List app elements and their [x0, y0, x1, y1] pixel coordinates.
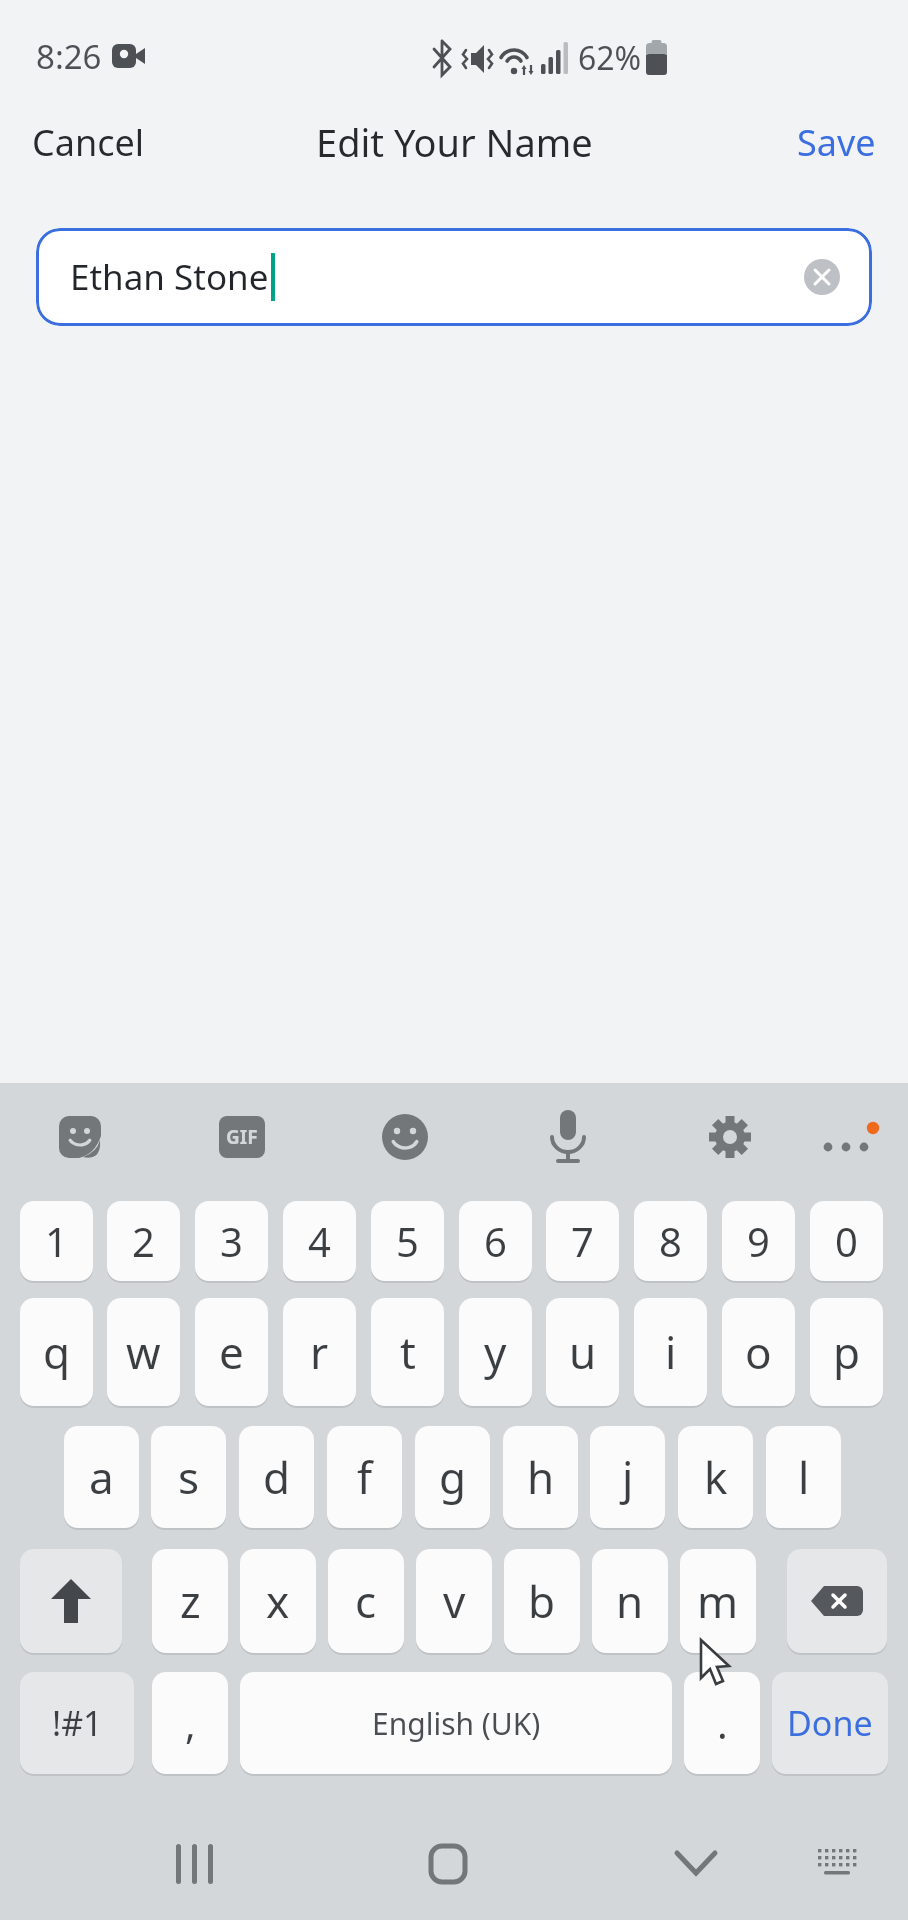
staticText: m	[697, 1571, 739, 1631]
staticText: Done	[787, 1700, 873, 1746]
button[interactable]: h	[503, 1426, 578, 1528]
button[interactable]	[20, 1549, 122, 1653]
button[interactable]: 1	[20, 1201, 93, 1281]
button[interactable]: 2	[107, 1201, 180, 1281]
button[interactable]	[805, 1832, 869, 1896]
staticText: s	[178, 1447, 200, 1507]
button[interactable]: i	[634, 1298, 707, 1406]
staticText: 9	[747, 1214, 770, 1268]
staticText: d	[263, 1447, 291, 1507]
button[interactable]	[160, 1828, 232, 1900]
button[interactable]: Save	[797, 112, 876, 172]
button[interactable]: c	[328, 1549, 404, 1653]
button[interactable]: English (UK)	[240, 1672, 672, 1774]
button[interactable]	[56, 1113, 104, 1161]
staticText: 0	[835, 1214, 858, 1268]
staticText: f	[357, 1447, 373, 1507]
staticText: .	[717, 1696, 728, 1750]
button[interactable]: .	[684, 1672, 760, 1774]
staticText: !#1	[52, 1700, 103, 1746]
button[interactable]	[381, 1113, 429, 1161]
button[interactable]	[820, 1113, 880, 1173]
button[interactable]: GIF	[218, 1113, 266, 1161]
button[interactable]: y	[459, 1298, 532, 1406]
button[interactable]	[544, 1109, 592, 1165]
staticText: y	[484, 1322, 507, 1382]
staticText: l	[798, 1447, 810, 1507]
staticText: 4	[308, 1214, 331, 1268]
staticText: 3	[220, 1214, 243, 1268]
button[interactable]	[412, 1828, 484, 1900]
button[interactable]: 6	[459, 1201, 532, 1281]
staticText: 62%	[578, 36, 642, 80]
staticText: a	[89, 1447, 114, 1507]
button[interactable]: z	[152, 1549, 228, 1653]
staticText: Edit Your Name	[316, 116, 593, 168]
staticText: g	[439, 1447, 467, 1507]
button[interactable]	[804, 259, 840, 295]
button[interactable]: o	[722, 1298, 795, 1406]
button[interactable]	[787, 1549, 887, 1653]
staticText: r	[310, 1322, 329, 1382]
staticText: 7	[571, 1214, 594, 1268]
button[interactable]: s	[151, 1426, 226, 1528]
staticText: q	[43, 1322, 71, 1382]
staticText: w	[126, 1322, 161, 1382]
button[interactable]: Done	[772, 1672, 888, 1774]
staticText: 8	[659, 1214, 682, 1268]
button[interactable]: 7	[546, 1201, 619, 1281]
button[interactable]	[660, 1828, 732, 1900]
staticText: e	[219, 1322, 244, 1382]
staticText: j	[622, 1447, 634, 1507]
button[interactable]: 4	[283, 1201, 356, 1281]
button[interactable]: m	[680, 1549, 756, 1653]
button[interactable]: 3	[195, 1201, 268, 1281]
button[interactable]: 8	[634, 1201, 707, 1281]
button[interactable]: k	[678, 1426, 753, 1528]
button[interactable]: !#1	[20, 1672, 134, 1774]
button[interactable]: a	[64, 1426, 139, 1528]
button[interactable]: l	[766, 1426, 841, 1528]
button[interactable]: r	[283, 1298, 356, 1406]
button[interactable]	[706, 1113, 754, 1161]
staticText: 2	[132, 1214, 155, 1268]
staticText: c	[355, 1571, 377, 1631]
staticText: u	[569, 1322, 597, 1382]
staticText: n	[616, 1571, 644, 1631]
staticText: 1	[45, 1214, 68, 1268]
button[interactable]: v	[416, 1549, 492, 1653]
staticText: x	[266, 1571, 290, 1631]
staticText: k	[704, 1447, 728, 1507]
staticText: English (UK)	[372, 1703, 541, 1744]
button[interactable]: f	[327, 1426, 402, 1528]
button[interactable]: 0	[810, 1201, 883, 1281]
button[interactable]: d	[239, 1426, 314, 1528]
button[interactable]: x	[240, 1549, 316, 1653]
staticText: Cancel	[32, 118, 145, 167]
button[interactable]: g	[415, 1426, 490, 1528]
button[interactable]: p	[810, 1298, 883, 1406]
button[interactable]: b	[504, 1549, 580, 1653]
button[interactable]: ,	[152, 1672, 228, 1774]
button[interactable]: 5	[371, 1201, 444, 1281]
staticText: o	[745, 1322, 772, 1382]
staticText: z	[180, 1571, 201, 1631]
button[interactable]: j	[590, 1426, 665, 1528]
button[interactable]: e	[195, 1298, 268, 1406]
staticText: b	[528, 1571, 556, 1631]
button[interactable]: Cancel	[32, 112, 145, 172]
button[interactable]: 9	[722, 1201, 795, 1281]
staticText: 8:26	[36, 34, 102, 79]
staticText: 6	[484, 1214, 507, 1268]
staticText: GIF	[226, 1124, 258, 1150]
staticText: p	[833, 1322, 861, 1382]
button[interactable]: Ethan Stone	[36, 228, 872, 326]
staticText: Ethan Stone	[70, 253, 269, 301]
button[interactable]: q	[20, 1298, 93, 1406]
button[interactable]: u	[546, 1298, 619, 1406]
staticText: v	[443, 1571, 466, 1631]
button[interactable]: w	[107, 1298, 180, 1406]
staticText: h	[527, 1447, 555, 1507]
button[interactable]: n	[592, 1549, 668, 1653]
button[interactable]: t	[371, 1298, 444, 1406]
